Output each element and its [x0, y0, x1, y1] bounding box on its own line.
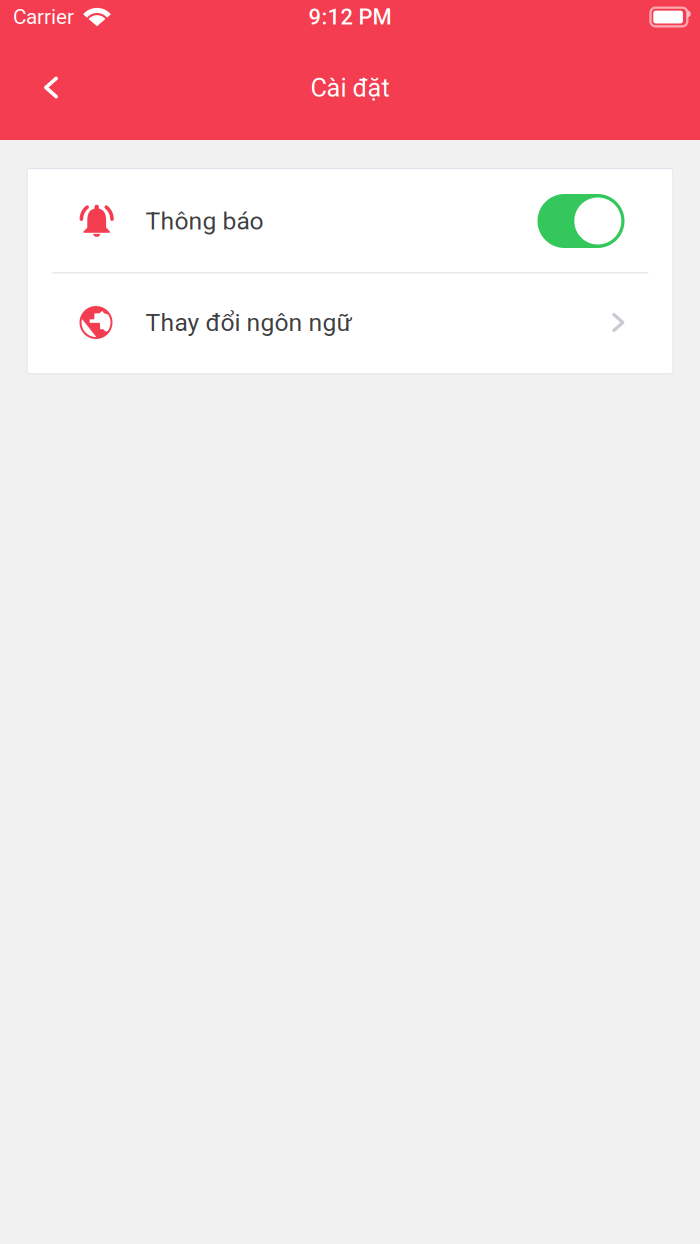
button[interactable]: Thông báo, on	[537, 194, 624, 248]
staticText: 9:12 PM	[308, 4, 391, 30]
staticText: Carrier	[13, 5, 74, 29]
button[interactable]: Thay đổi ngôn ngữ	[26, 273, 673, 374]
staticText: Thay đổi ngôn ngữ	[145, 308, 351, 337]
staticText: Cài đặt	[310, 73, 389, 103]
staticText: Thông báo	[145, 206, 263, 235]
button[interactable]: Back	[21, 55, 81, 119]
